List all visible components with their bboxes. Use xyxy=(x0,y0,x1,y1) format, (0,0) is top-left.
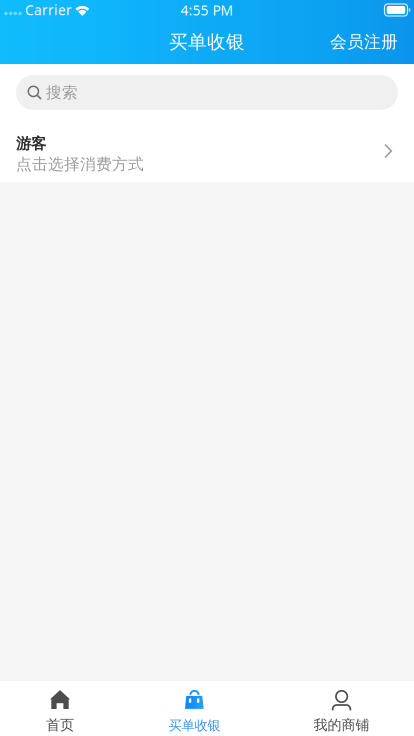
staticText: 游客 xyxy=(16,134,46,153)
staticText: 首页 xyxy=(46,716,74,734)
staticText: 会员注册 xyxy=(330,31,398,53)
button[interactable]: 会员注册 xyxy=(324,24,404,60)
button[interactable]: 首页 xyxy=(0,680,120,736)
staticText: 搜索 xyxy=(46,83,78,102)
staticText: 点击选择消费方式 xyxy=(16,154,144,174)
button[interactable]: 搜索 xyxy=(16,75,398,110)
button[interactable]: 我的商铺 xyxy=(269,680,414,736)
staticText: 买单收银 xyxy=(169,30,245,54)
staticText: 4:55 PM xyxy=(180,1,233,19)
button[interactable]: 买单收银 xyxy=(120,680,269,736)
staticText: 买单收银 xyxy=(168,717,220,734)
staticText: Carrier xyxy=(25,1,72,19)
staticText: 我的商铺 xyxy=(313,716,369,734)
button[interactable]: 游客 xyxy=(0,118,414,182)
